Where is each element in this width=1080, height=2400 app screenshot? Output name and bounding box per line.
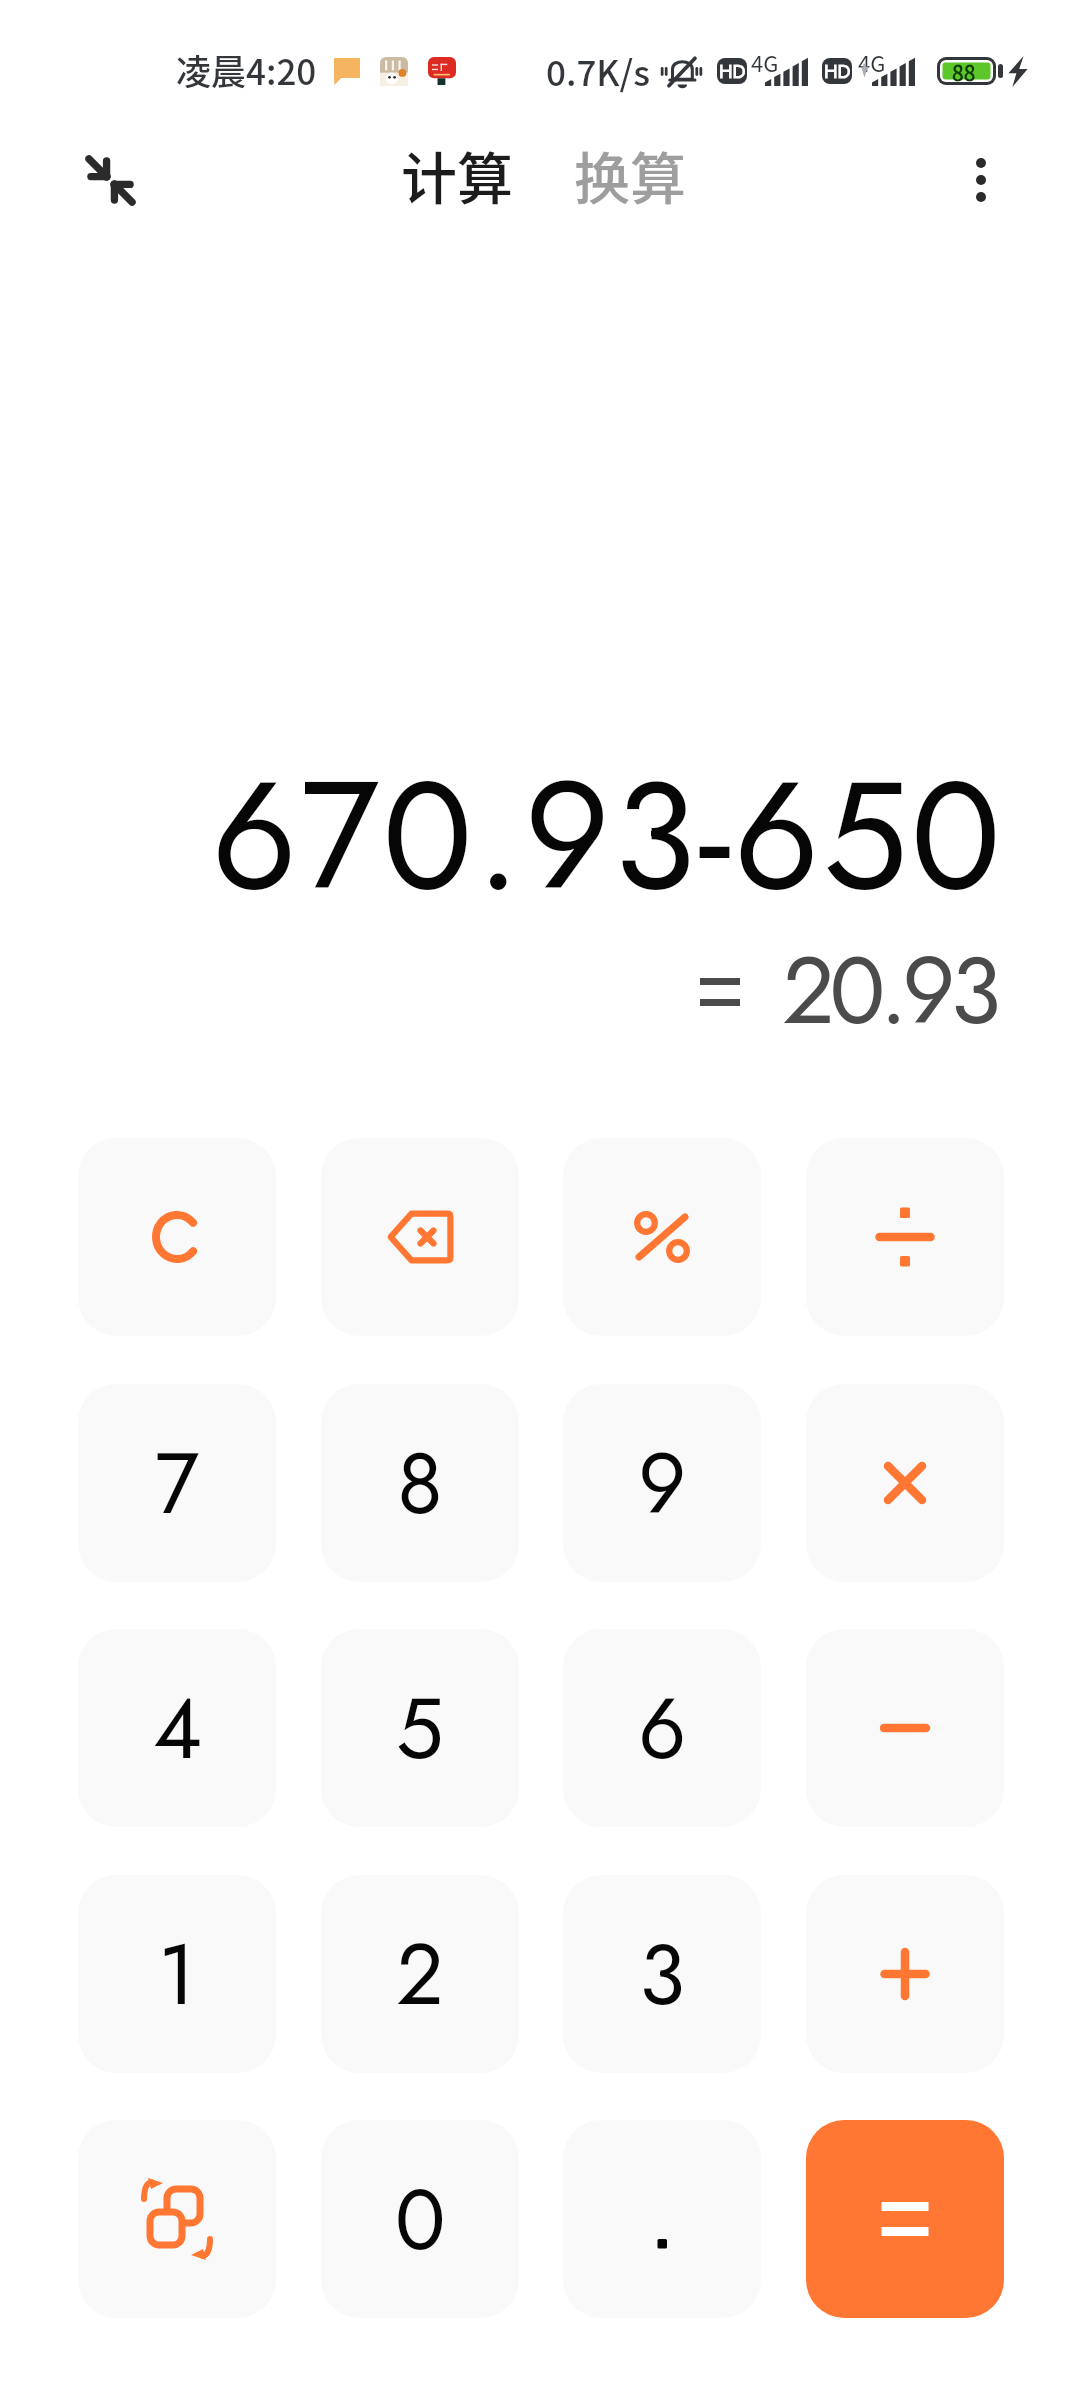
button[interactable]: Minus xyxy=(806,1629,1004,1827)
button[interactable]: Multiply xyxy=(806,1384,1004,1582)
staticText: 0 xyxy=(395,2159,446,2280)
staticText: 计算 xyxy=(401,134,513,215)
button[interactable]: Collapse xyxy=(65,135,155,225)
button[interactable]: 6 xyxy=(563,1629,761,1827)
button[interactable]: 2 xyxy=(321,1875,519,2073)
staticText: 1 xyxy=(158,1914,196,2035)
staticText: 2 xyxy=(396,1914,444,2035)
button[interactable]: 0 xyxy=(321,2120,519,2318)
button[interactable]: 3 xyxy=(563,1875,761,2073)
staticText: 凌晨4:20 xyxy=(176,44,317,95)
staticText: 4G xyxy=(858,46,886,78)
staticText: 20.93 xyxy=(782,923,996,1057)
button[interactable]: 计算 xyxy=(391,125,523,224)
staticText: 9 xyxy=(638,1423,687,1544)
button[interactable]: Divide xyxy=(806,1138,1004,1336)
button[interactable]: Equals xyxy=(806,2120,1004,2318)
staticText: 8 xyxy=(397,1423,443,1544)
staticText: 4G xyxy=(751,46,779,78)
button[interactable]: 换算 xyxy=(564,125,696,224)
button[interactable]: 8 xyxy=(321,1384,519,1582)
button[interactable]: Backspace xyxy=(321,1138,519,1336)
button[interactable]: Plus xyxy=(806,1875,1004,2073)
staticText: 5 xyxy=(396,1668,444,1789)
button[interactable]: More options xyxy=(936,135,1026,225)
button[interactable]: 9 xyxy=(563,1384,761,1582)
staticText: 换算 xyxy=(574,134,686,215)
button[interactable]: 5 xyxy=(321,1629,519,1827)
button[interactable]: 1 xyxy=(78,1875,276,2073)
staticText: 7 xyxy=(155,1423,200,1544)
button[interactable]: 7 xyxy=(78,1384,276,1582)
button[interactable]: Decimal point xyxy=(563,2120,761,2318)
staticText: 0.7K/s xyxy=(546,45,651,96)
staticText: HD xyxy=(719,58,746,84)
staticText: 88 xyxy=(952,57,976,85)
button[interactable]: 4 xyxy=(78,1629,276,1827)
staticText: 6 xyxy=(638,1668,687,1789)
staticText: 670.93-650 xyxy=(211,727,1004,944)
staticText: 3 xyxy=(639,1914,685,2035)
staticText: 4 xyxy=(153,1668,202,1789)
button[interactable]: Clear xyxy=(78,1138,276,1336)
staticText: HD xyxy=(824,58,851,84)
button[interactable]: History xyxy=(78,2120,276,2318)
button[interactable]: Percent xyxy=(563,1138,761,1336)
